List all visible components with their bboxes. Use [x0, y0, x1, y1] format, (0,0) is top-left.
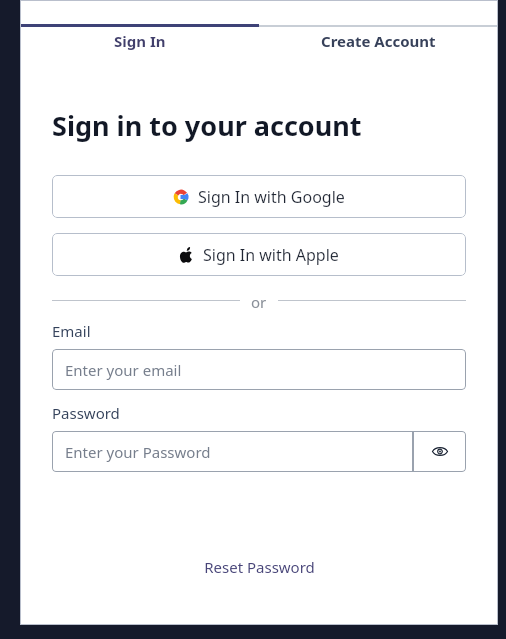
staticText: Email: [52, 321, 91, 341]
staticText: Sign In: [114, 31, 166, 51]
staticText: Password: [52, 403, 120, 423]
staticText: Reset Password: [204, 557, 315, 577]
button[interactable]: Enter your Password: [52, 431, 413, 472]
button[interactable]: [20, 0, 259, 27]
staticText: Sign In with Apple: [203, 244, 339, 266]
staticText: Create Account: [321, 31, 436, 51]
staticText: Sign in to your account: [52, 107, 362, 144]
button[interactable]: Sign In with Google: [52, 175, 466, 218]
button[interactable]: [259, 0, 498, 27]
staticText: or: [251, 292, 267, 308]
staticText: Enter your Password: [65, 442, 211, 462]
staticText: Sign In with Google: [198, 186, 345, 208]
button[interactable]: Show password: [413, 431, 466, 472]
button[interactable]: Create Account: [259, 27, 498, 55]
button[interactable]: Sign In: [20, 27, 259, 55]
button[interactable]: Sign In with Apple: [52, 233, 466, 276]
button[interactable]: Enter your email: [52, 349, 466, 390]
staticText: Enter your email: [65, 360, 182, 380]
button[interactable]: Reset Password: [52, 557, 466, 577]
